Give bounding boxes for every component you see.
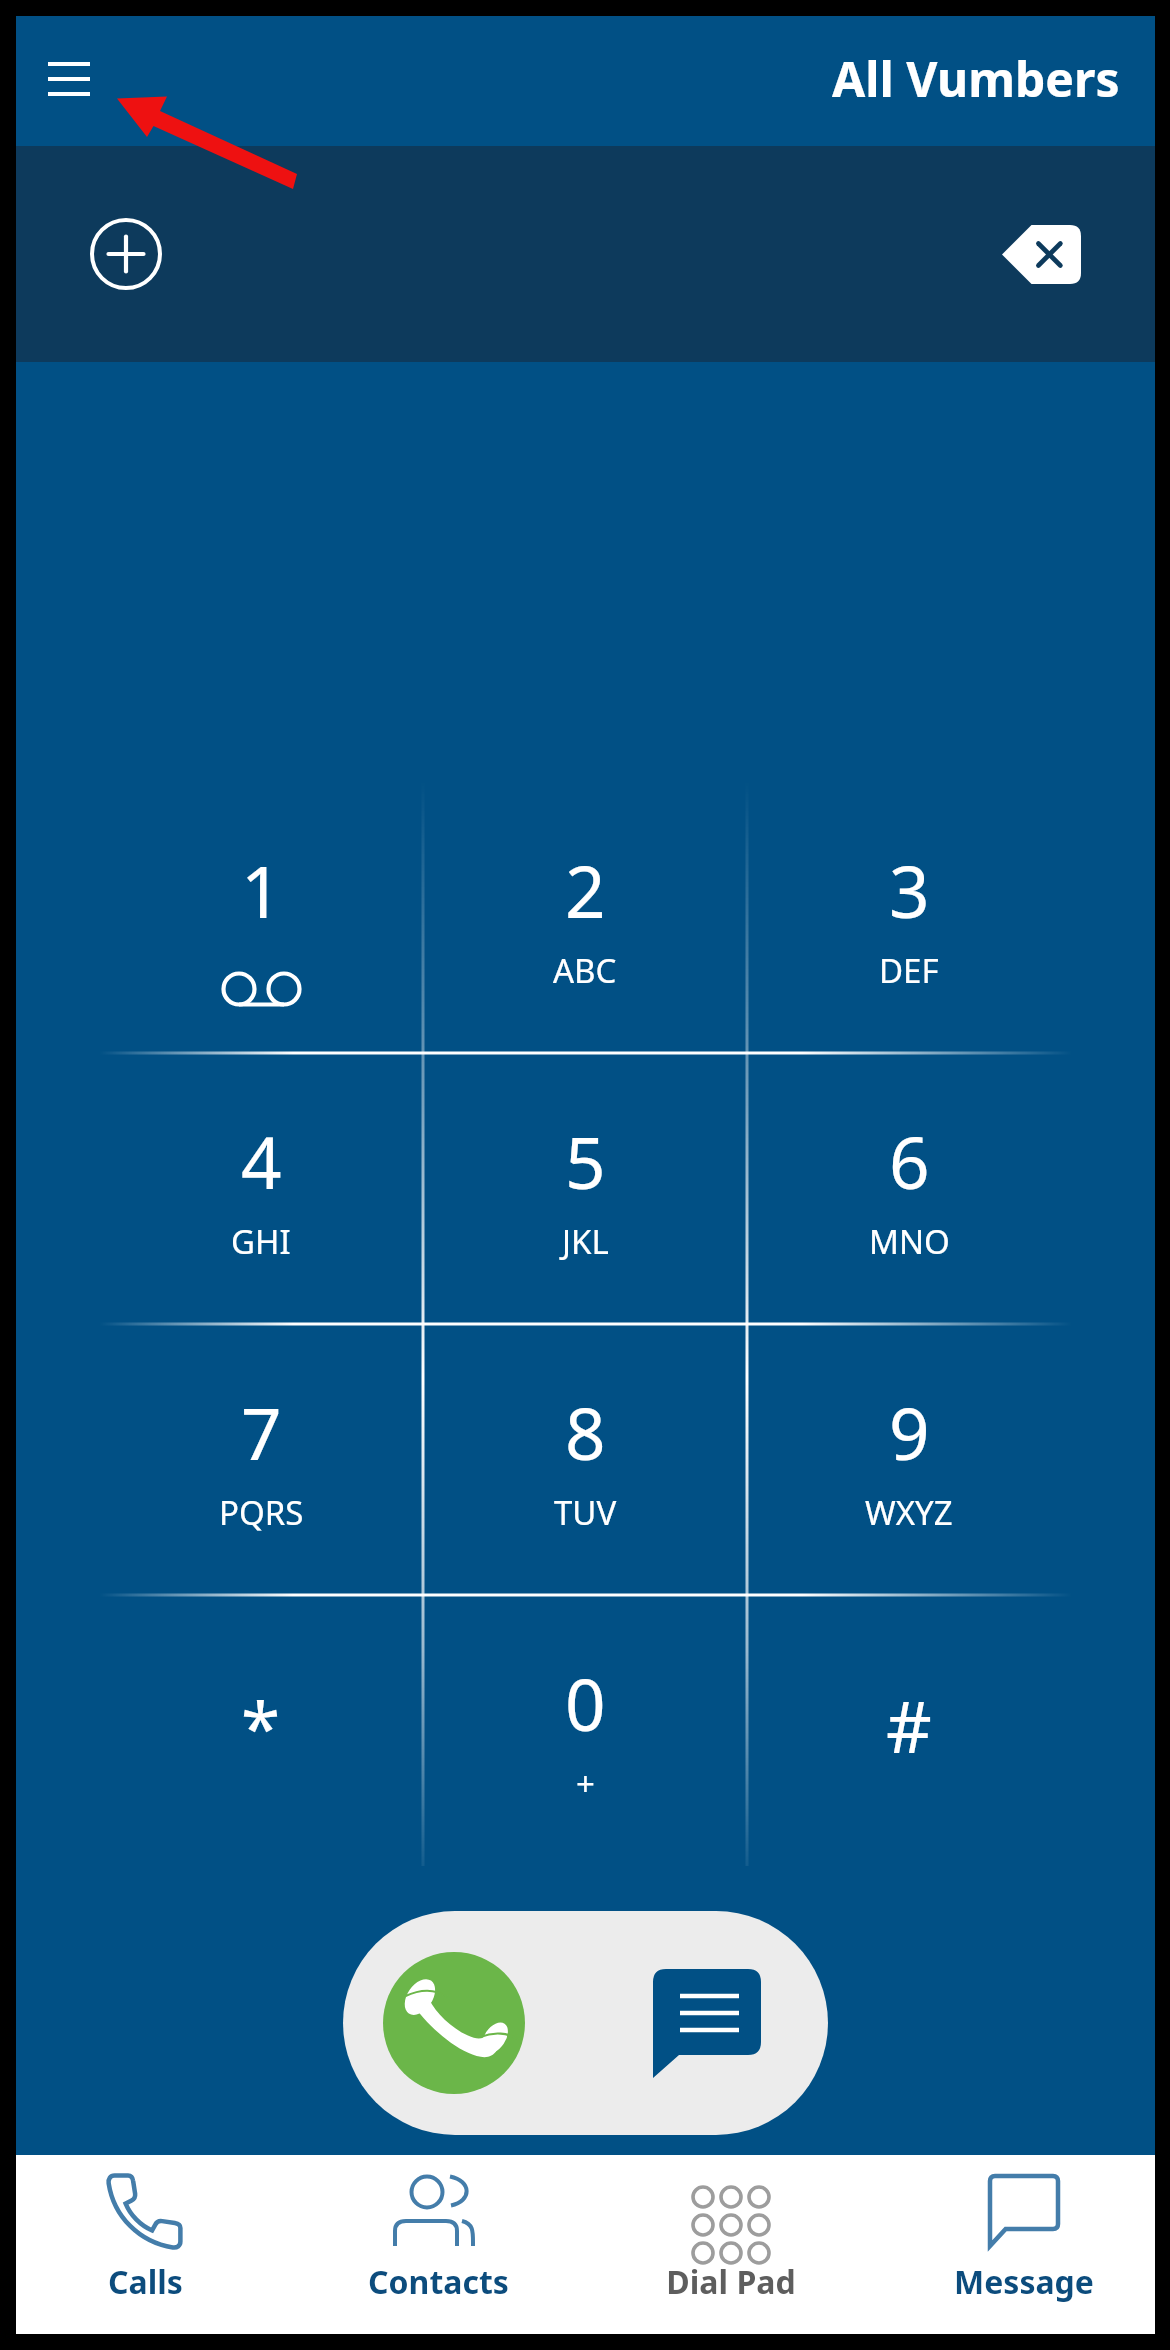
staticText: 0 xyxy=(565,1655,606,1752)
button[interactable]: # xyxy=(747,1595,1071,1866)
staticText: 4 xyxy=(241,1113,282,1210)
staticText: MNO xyxy=(869,1219,950,1264)
button[interactable]: 6 xyxy=(747,1053,1071,1324)
staticText: Calls xyxy=(108,2260,183,2304)
staticText: ABC xyxy=(553,948,617,993)
staticText: JKL xyxy=(562,1219,609,1264)
staticText: 5 xyxy=(565,1113,606,1210)
staticText: All Vumbers xyxy=(832,46,1120,111)
staticText: 1 xyxy=(241,842,282,939)
staticText: Contacts xyxy=(368,2260,509,2304)
button[interactable]: * xyxy=(99,1595,423,1866)
button[interactable]: 8 xyxy=(423,1324,747,1595)
button[interactable]: 0 xyxy=(423,1595,747,1866)
staticText: Dial Pad xyxy=(666,2260,796,2304)
staticText: TUV xyxy=(554,1490,617,1535)
button[interactable]: Calls xyxy=(15,2155,275,2334)
staticText: 2 xyxy=(565,842,606,939)
button[interactable]: 7 xyxy=(99,1324,423,1595)
staticText: 9 xyxy=(889,1384,930,1481)
staticText: GHI xyxy=(231,1219,291,1264)
staticText: + xyxy=(576,1761,595,1806)
button[interactable]: 5 xyxy=(423,1053,747,1324)
staticText: DEF xyxy=(879,948,939,993)
button[interactable]: Send message xyxy=(585,1911,828,2135)
button[interactable]: 1 xyxy=(99,782,423,1053)
staticText: 3 xyxy=(889,842,930,939)
staticText: PQRS xyxy=(219,1490,304,1535)
button[interactable]: Backspace xyxy=(989,212,1093,296)
button[interactable]: 2 xyxy=(423,782,747,1053)
button[interactable]: 9 xyxy=(747,1324,1071,1595)
button[interactable]: Contacts xyxy=(308,2155,568,2334)
button[interactable]: Add contact xyxy=(78,206,174,302)
button[interactable]: Dial Pad xyxy=(601,2155,861,2334)
staticText: WXYZ xyxy=(865,1490,953,1535)
button[interactable]: Menu xyxy=(16,26,122,132)
staticText: * xyxy=(241,1678,281,1775)
staticText: Message xyxy=(954,2260,1094,2304)
staticText: 6 xyxy=(889,1113,930,1210)
staticText: 8 xyxy=(565,1384,606,1481)
button[interactable]: 3 xyxy=(747,782,1071,1053)
staticText: 7 xyxy=(241,1384,282,1481)
button[interactable]: Message xyxy=(894,2155,1154,2334)
button[interactable]: 4 xyxy=(99,1053,423,1324)
staticText: # xyxy=(886,1677,932,1774)
button[interactable]: Call xyxy=(343,1911,585,2135)
